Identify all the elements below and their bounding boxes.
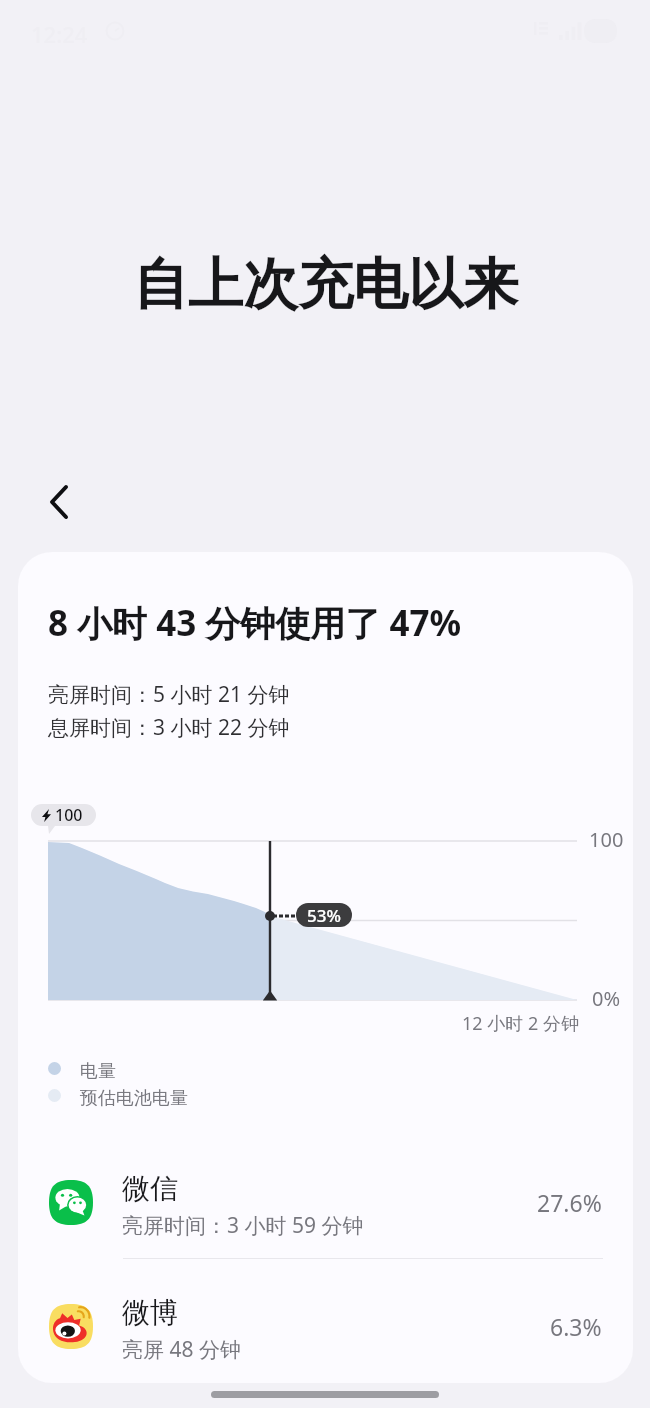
staticText: 微信 xyxy=(122,1171,178,1206)
staticText: 12 小时 2 分钟 xyxy=(462,1011,579,1036)
staticText: 自上次充电以来 xyxy=(133,250,518,319)
staticText: 亮屏时间：5 小时 21 分钟 xyxy=(48,680,290,709)
button[interactable]: 微博 xyxy=(18,1276,633,1383)
staticText: 0% xyxy=(592,985,621,1012)
staticText: 电量 xyxy=(80,1060,116,1083)
staticText: 微博 xyxy=(122,1295,178,1330)
staticText: 亮屏时间：3 小时 59 分钟 xyxy=(122,1211,364,1240)
button[interactable]: 微信 xyxy=(18,1152,633,1276)
staticText: 8 小时 43 分钟使用了 47% xyxy=(48,599,462,647)
staticText: 预估电池电量 xyxy=(80,1087,188,1110)
staticText: 53% xyxy=(307,904,341,927)
staticText: 27.6% xyxy=(537,1187,602,1218)
staticText: 6.3% xyxy=(550,1311,602,1342)
staticText: 息屏时间：3 小时 22 分钟 xyxy=(48,713,290,742)
staticText: 100 xyxy=(589,826,624,853)
staticText: 100 xyxy=(55,804,83,826)
button[interactable]: Back xyxy=(27,470,91,534)
staticText: 亮屏 48 分钟 xyxy=(122,1335,241,1364)
